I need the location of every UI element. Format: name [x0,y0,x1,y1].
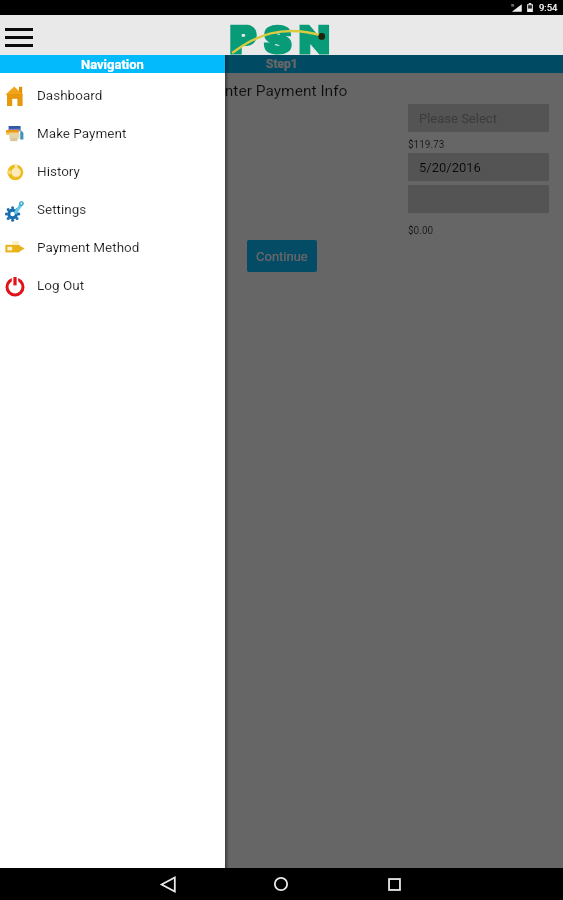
staticText: Continue [256,249,308,264]
button[interactable]: Settings [0,190,225,228]
staticText: 9:54 [539,2,558,13]
button[interactable]: Please Select [408,104,549,132]
button[interactable]: Payment Method [0,228,225,266]
staticText: Make Payment [37,125,127,141]
staticText: $0.00 [408,225,434,237]
button[interactable]: Open navigation menu [1,19,37,55]
staticText: Enter Payment Info [216,82,348,100]
button[interactable]: Dashboard [0,76,225,114]
button[interactable]: History [0,152,225,190]
button[interactable]: Home [266,869,296,899]
button[interactable]: Make Payment [0,114,225,152]
staticText: PSN [228,20,337,60]
staticText: Dashboard [37,87,103,103]
staticText: Settings [37,201,87,217]
button[interactable]: Back [153,869,183,899]
button[interactable]: Log Out [0,266,225,304]
button[interactable]: 5/20/2016 [408,153,549,181]
staticText: Step1 [266,57,298,71]
staticText: 5/20/2016 [419,160,481,175]
staticText: $119.73 [408,139,445,151]
staticText: Navigation [81,57,144,72]
staticText: History [37,163,80,179]
button[interactable]: Recent apps [379,869,409,899]
staticText: Please Select [419,111,497,126]
button[interactable]: Continue [247,240,317,272]
staticText: Log Out [37,277,85,293]
staticText: Payment Method [37,239,140,255]
